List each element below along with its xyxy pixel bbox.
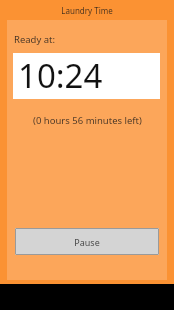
button[interactable]: Pause (15, 228, 159, 255)
staticText: Ready at: (14, 33, 56, 46)
staticText: Pause (74, 236, 100, 248)
staticText: 10:24 (18, 53, 103, 97)
staticText: (0 hours 56 minutes left) (33, 114, 142, 127)
staticText: Laundry Time (61, 5, 113, 16)
